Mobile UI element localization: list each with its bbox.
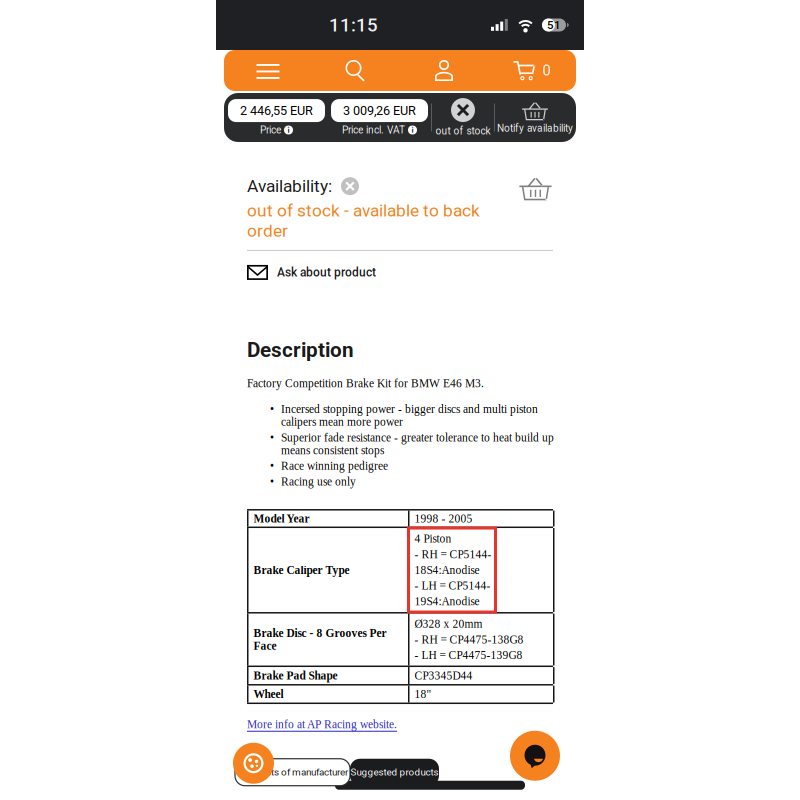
button[interactable]: Open chat: [510, 731, 560, 781]
staticText: 2 446,55 EUR: [240, 103, 313, 118]
staticText: Ask about product: [277, 265, 376, 279]
staticText: 51: [547, 18, 561, 32]
staticText: out of stock - available to back order: [247, 200, 480, 241]
staticText: - RH = CP4475-138G8: [414, 633, 523, 646]
staticText: •: [270, 403, 274, 416]
button[interactable]: My account: [400, 50, 488, 91]
staticText: Price incl. VAT: [342, 124, 405, 136]
button[interactable]: Search: [312, 50, 400, 91]
button[interactable]: Cookie settings: [233, 743, 274, 784]
staticText: Racing use only: [281, 475, 356, 488]
staticText: Description: [247, 338, 354, 362]
staticText: Race winning pedigree: [281, 460, 388, 472]
button[interactable]: Notify availability: [495, 93, 575, 142]
staticText: i: [287, 125, 289, 135]
staticText: Suggested products: [350, 766, 438, 778]
staticText: 0: [542, 62, 550, 79]
staticText: •: [270, 431, 274, 444]
staticText: Products of manufacturer: [240, 766, 348, 778]
staticText: 4 Piston: [414, 532, 451, 545]
staticText: Wheel: [253, 688, 283, 700]
staticText: Incersed stopping power - bigger discs a…: [281, 403, 538, 428]
button[interactable]: Add to basket: [518, 176, 553, 203]
button[interactable]: out of stock: [432, 93, 494, 142]
button[interactable]: Suggested products: [350, 759, 439, 786]
staticText: Availability:: [247, 176, 332, 196]
button[interactable]: More info at AP Racing website.: [247, 718, 397, 732]
staticText: - RH = CP5144-: [414, 548, 491, 561]
staticText: Superior fade resistance - greater toler…: [281, 431, 554, 457]
staticText: out of stock: [435, 125, 490, 137]
button[interactable]: Shopping cart: [488, 50, 576, 91]
staticText: Factory Competition Brake Kit for BMW E4…: [247, 377, 484, 390]
staticText: 19S4:Anodise: [414, 595, 479, 608]
staticText: - LH = CP5144-: [414, 579, 490, 592]
staticText: 18S4:Anodise: [414, 564, 479, 576]
button[interactable]: Menu: [224, 50, 312, 91]
staticText: i: [411, 125, 413, 135]
staticText: 11:15: [329, 14, 378, 36]
staticText: Brake Pad Shape: [253, 669, 337, 682]
staticText: 18": [414, 688, 431, 700]
staticText: Notify availability: [497, 122, 573, 134]
staticText: 3 009,26 EUR: [343, 103, 416, 118]
button[interactable]: Products of manufacturer: [235, 759, 350, 786]
staticText: •: [270, 475, 274, 488]
staticText: - LH = CP4475-139G8: [414, 649, 522, 662]
staticText: •: [270, 460, 274, 472]
staticText: Model Year: [253, 512, 309, 525]
staticText: Ø328 x 20mm: [414, 617, 482, 630]
staticText: 1998 - 2005: [414, 512, 472, 525]
button[interactable]: Ask about product: [247, 258, 553, 287]
staticText: More info at AP Racing website.: [247, 718, 397, 731]
staticText: CP3345D44: [414, 669, 472, 682]
staticText: Brake Disc - 8 Grooves Per Face: [253, 627, 386, 652]
staticText: Price: [260, 124, 281, 136]
staticText: Brake Caliper Type: [253, 564, 349, 576]
